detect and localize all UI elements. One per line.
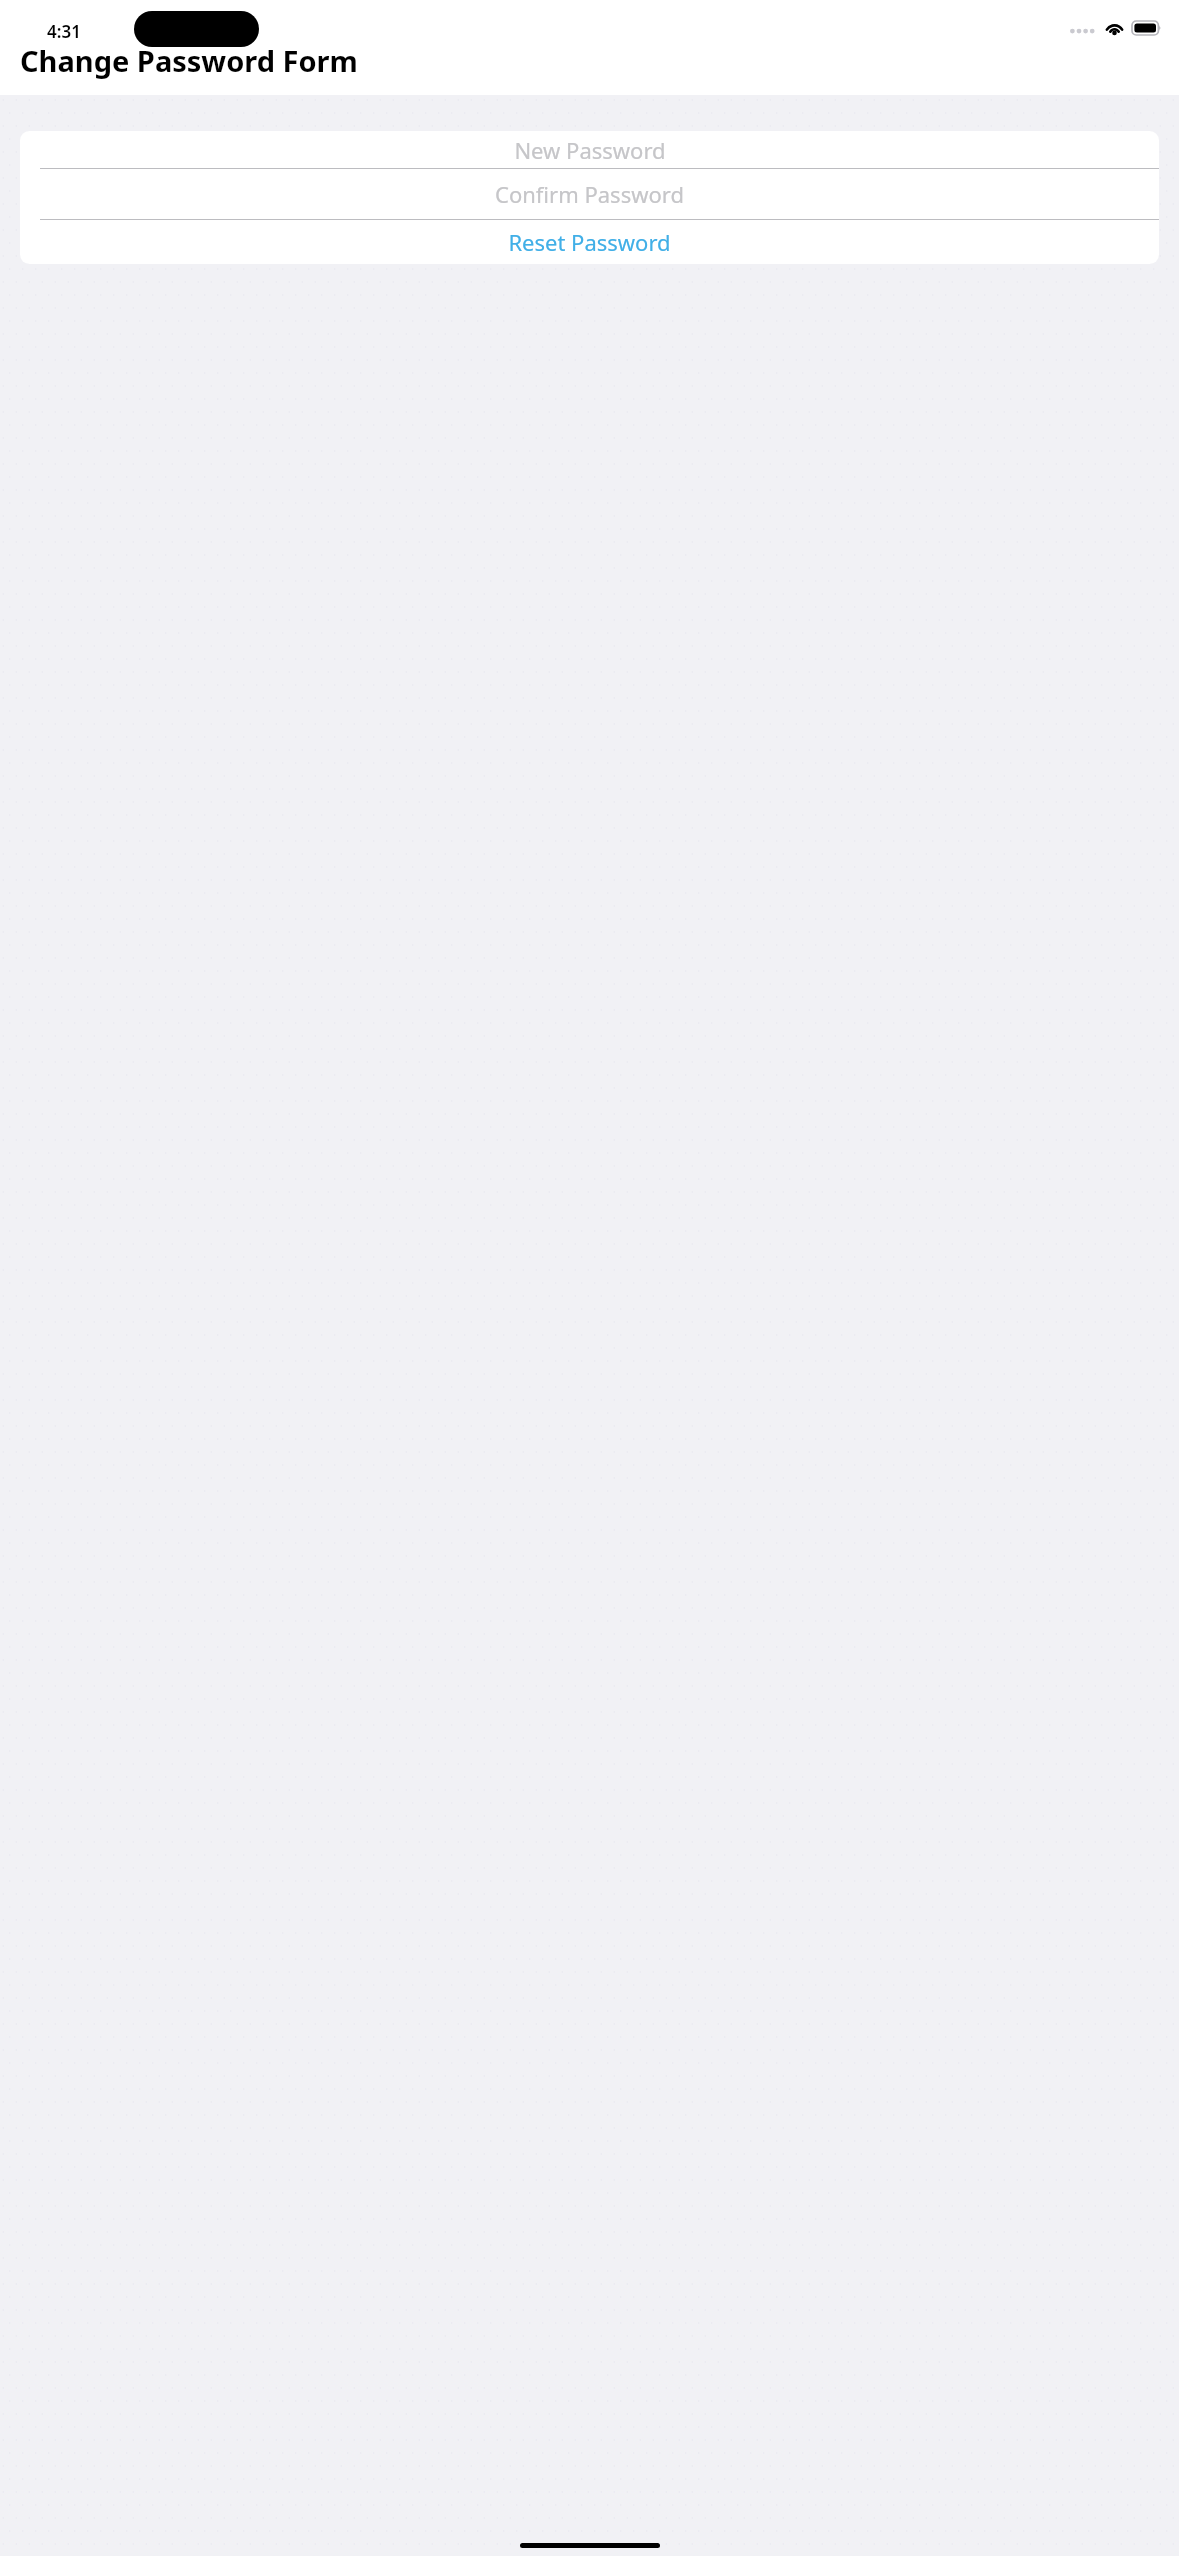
- staticText: Change Password Form: [20, 41, 358, 80]
- staticText: New Password: [514, 135, 666, 165]
- button[interactable]: Reset Password: [20, 220, 1159, 264]
- staticText: Confirm Password: [495, 179, 684, 209]
- button[interactable]: Confirm Password: [20, 169, 1159, 219]
- staticText: 4:31: [47, 20, 81, 43]
- button[interactable]: New Password: [20, 131, 1159, 168]
- staticText: Reset Password: [508, 227, 671, 257]
